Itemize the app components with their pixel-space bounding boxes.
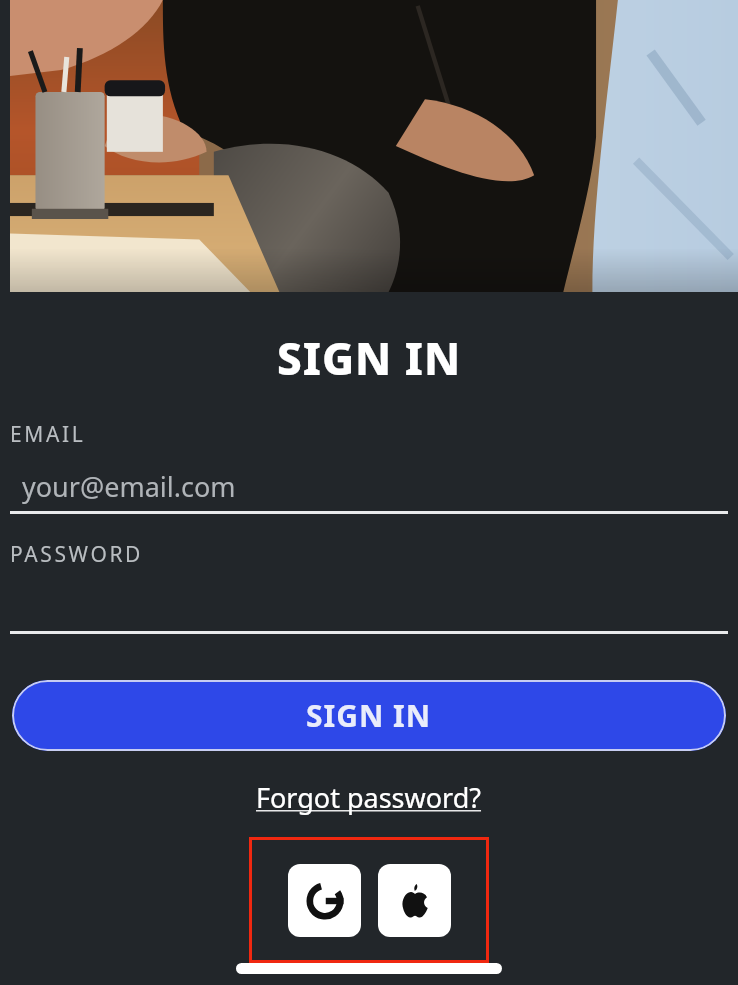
button[interactable]: your@email.com: [10, 467, 728, 505]
button[interactable]: Forgot password?: [250, 777, 488, 818]
staticText: SIGN IN: [306, 695, 432, 736]
button[interactable]: Sign in with Google: [288, 864, 361, 937]
staticText: Forgot password?: [256, 779, 482, 816]
staticText: SIGN IN: [277, 328, 462, 388]
staticText: EMAIL: [10, 420, 86, 449]
button[interactable]: SIGN IN: [12, 680, 726, 751]
staticText: your@email.com: [22, 468, 236, 505]
staticText: PASSWORD: [10, 540, 144, 569]
button[interactable]: Sign in with Apple: [378, 864, 451, 937]
